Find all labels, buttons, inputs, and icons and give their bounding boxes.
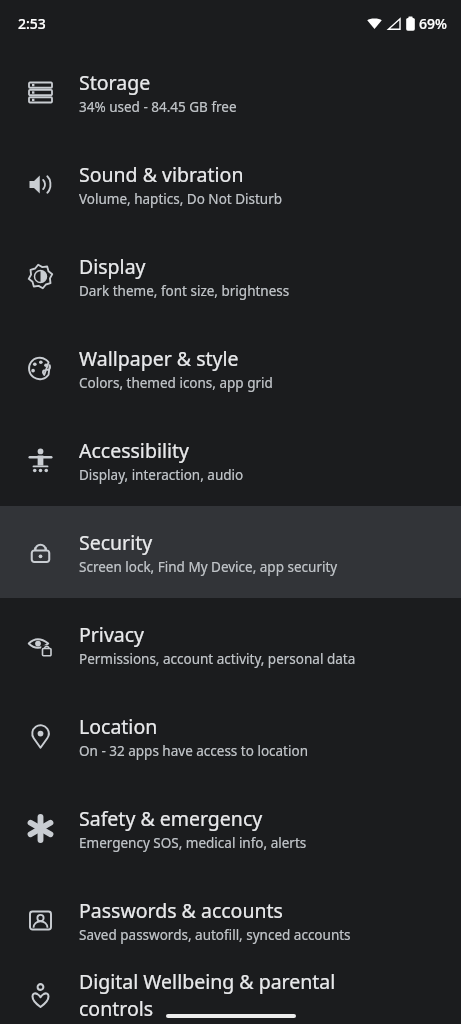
staticText: Display, interaction, audio xyxy=(79,466,244,484)
staticText: Display xyxy=(79,253,146,280)
staticText: Wallpaper & style xyxy=(79,345,239,372)
staticText: Volume, haptics, Do Not Disturb xyxy=(79,190,283,208)
staticText: Passwords & accounts xyxy=(79,897,283,924)
button[interactable]: Accessibility xyxy=(0,414,461,506)
button[interactable]: Wallpaper & style xyxy=(0,322,461,414)
staticText: Storage xyxy=(79,69,151,96)
button[interactable]: Security xyxy=(0,506,461,598)
button[interactable]: Digital Wellbeing & parental xyxy=(0,966,461,1024)
staticText: Security xyxy=(79,529,153,556)
button[interactable]: Sound & vibration xyxy=(0,138,461,230)
staticText: controls xyxy=(79,995,154,1022)
staticText: Colors, themed icons, app grid xyxy=(79,374,273,392)
button[interactable]: Privacy xyxy=(0,598,461,690)
staticText: Permissions, account activity, personal … xyxy=(79,650,356,668)
staticText: 69% xyxy=(419,14,447,33)
staticText: Sound & vibration xyxy=(79,161,244,188)
staticText: 34% used - 84.45 GB free xyxy=(79,98,237,116)
staticText: Digital Wellbeing & parental xyxy=(79,968,336,995)
staticText: Accessibility xyxy=(79,437,189,464)
staticText: Saved passwords, autofill, synced accoun… xyxy=(79,926,351,944)
button[interactable]: Safety & emergency xyxy=(0,782,461,874)
button[interactable]: Passwords & accounts xyxy=(0,874,461,966)
button[interactable]: Location xyxy=(0,690,461,782)
button[interactable]: Storage xyxy=(0,46,461,138)
staticText: 2:53 xyxy=(18,14,46,33)
button[interactable]: Display xyxy=(0,230,461,322)
staticText: Screen lock, Find My Device, app securit… xyxy=(79,558,338,576)
staticText: Safety & emergency xyxy=(79,805,263,832)
staticText: Dark theme, font size, brightness xyxy=(79,282,290,300)
staticText: Location xyxy=(79,713,158,740)
staticText: Privacy xyxy=(79,621,145,648)
staticText: Emergency SOS, medical info, alerts xyxy=(79,834,307,852)
staticText: On - 32 apps have access to location xyxy=(79,742,308,760)
